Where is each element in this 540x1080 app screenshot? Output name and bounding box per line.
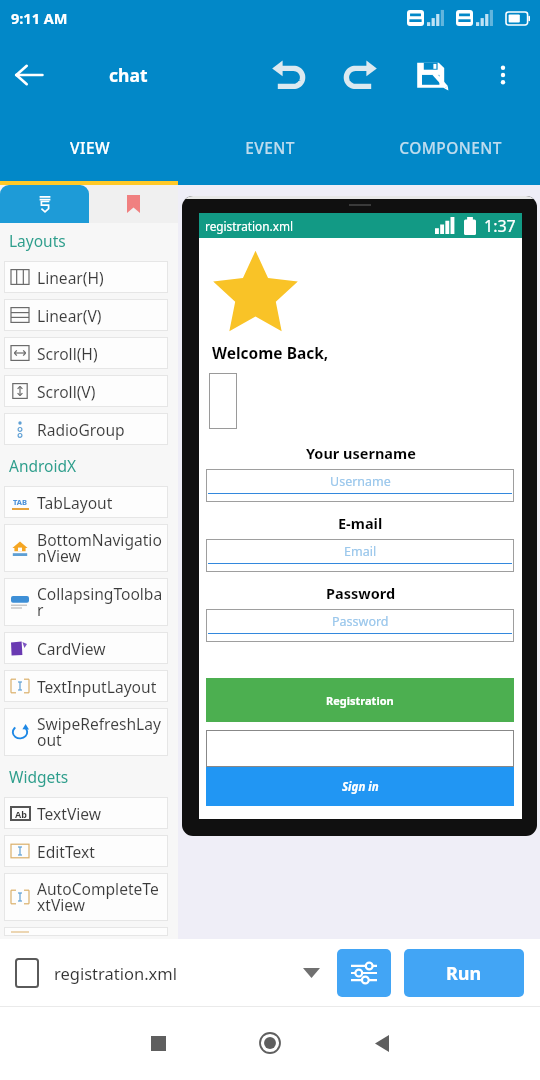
button[interactable]: CollapsingToolbar <box>4 578 168 626</box>
staticText: E-mail <box>338 513 383 533</box>
button[interactable]: VIEW <box>0 113 180 181</box>
staticText: AndroidX <box>9 455 77 476</box>
button[interactable]: Back <box>343 1006 421 1080</box>
staticText: Your username <box>306 443 416 463</box>
staticText: Linear(H) <box>37 267 104 288</box>
staticText: Ab <box>15 808 27 820</box>
button[interactable]: MultiAutoComplet <box>4 927 168 936</box>
staticText: TextView <box>37 803 102 824</box>
staticText: RadioGroup <box>37 419 125 440</box>
staticText: Widgets <box>9 766 69 787</box>
staticText: VIEW <box>70 137 110 158</box>
button[interactable]: Scroll(V) <box>4 375 168 407</box>
staticText: Run <box>446 961 482 986</box>
button[interactable]: Ab <box>4 797 168 829</box>
staticText: Sign in <box>342 779 379 795</box>
staticText: Password <box>326 583 396 603</box>
button[interactable]: Choose layout file <box>291 953 331 993</box>
button[interactable]: TAB <box>4 486 168 518</box>
button[interactable]: AutoCompleteTextView <box>4 873 168 921</box>
staticText: Layouts <box>9 230 66 251</box>
staticText: CardView <box>37 638 106 659</box>
button[interactable]: Registration <box>206 678 514 722</box>
staticText: 1:37 <box>484 215 516 237</box>
button[interactable]: RadioGroup <box>4 413 168 445</box>
staticText: EditText <box>37 841 95 862</box>
staticText: COMPONENT <box>399 137 502 158</box>
button[interactable]: More options <box>466 37 540 113</box>
button[interactable]: Recents <box>119 1006 197 1080</box>
staticText: Scroll(V) <box>37 381 96 402</box>
button[interactable]: Components <box>0 185 89 223</box>
staticText: AutoCompleteTextView <box>37 878 166 916</box>
staticText: TabLayout <box>37 492 113 513</box>
staticText: Email <box>344 543 377 560</box>
staticText: TAB <box>13 497 27 507</box>
staticText: Password <box>332 613 389 630</box>
button[interactable]: EditText <box>4 835 168 867</box>
staticText: registration.xml <box>205 218 293 234</box>
staticText: Scroll(H) <box>37 343 98 364</box>
button[interactable]: Sign in <box>206 767 514 806</box>
staticText: Welcome Back, <box>212 342 329 363</box>
staticText: 9:11 AM <box>11 8 68 28</box>
staticText: TextInputLayout <box>37 676 157 697</box>
button[interactable]: Redo <box>324 37 395 113</box>
button[interactable]: CardView <box>4 632 168 664</box>
staticText: registration.xml <box>54 962 178 984</box>
button[interactable]: Linear(H) <box>4 261 168 293</box>
staticText: Username <box>330 473 391 490</box>
staticText: SwipeRefreshLayout <box>37 713 166 751</box>
button[interactable]: Favorites <box>89 185 178 223</box>
button[interactable]: Run <box>404 949 524 997</box>
staticText: EVENT <box>245 137 295 158</box>
button[interactable]: Settings <box>337 949 391 997</box>
button[interactable]: SwipeRefreshLayout <box>4 708 168 756</box>
button[interactable]: Home <box>231 1006 309 1080</box>
button[interactable]: EVENT <box>180 113 360 181</box>
staticText: CollapsingToolbar <box>37 583 166 621</box>
button[interactable]: Save <box>395 37 466 113</box>
button[interactable]: Back <box>0 37 58 113</box>
staticText: chat <box>109 63 148 87</box>
button[interactable]: Scroll(H) <box>4 337 168 369</box>
button[interactable]: BottomNavigationView <box>4 524 168 572</box>
button[interactable]: COMPONENT <box>360 113 540 181</box>
button[interactable]: Linear(V) <box>4 299 168 331</box>
button[interactable]: Undo <box>253 37 324 113</box>
button[interactable]: TextInputLayout <box>4 670 168 702</box>
staticText: BottomNavigationView <box>37 529 166 567</box>
staticText: Linear(V) <box>37 305 102 326</box>
staticText: Registration <box>326 693 394 708</box>
